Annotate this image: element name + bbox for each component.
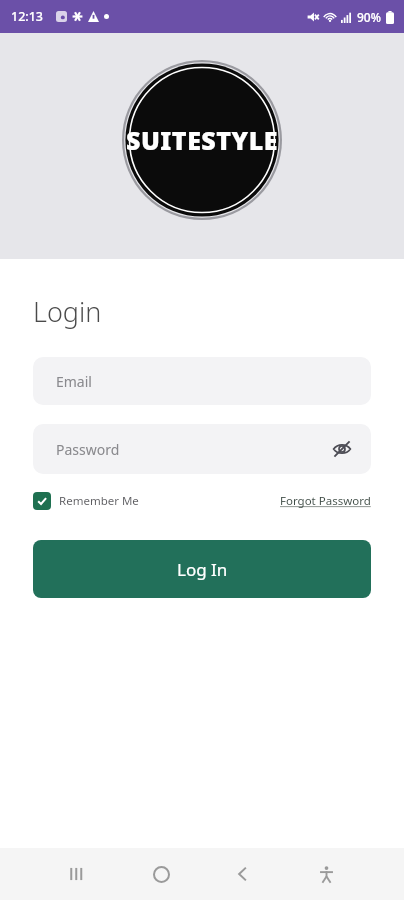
staticText: Email (56, 372, 92, 391)
staticText: Login (33, 293, 102, 330)
button[interactable]: Log In (33, 540, 371, 598)
staticText: Password (56, 440, 120, 459)
button[interactable]: Remember Me (33, 492, 139, 510)
button[interactable]: Show password (329, 436, 355, 462)
staticText: Remember Me (59, 493, 139, 509)
staticText: 90% (357, 9, 381, 25)
staticText: SUITESTYLE (126, 123, 278, 157)
button[interactable]: Back (221, 852, 265, 896)
button[interactable]: Accessibility (304, 852, 348, 896)
staticText: Forgot Password (280, 493, 371, 509)
button[interactable]: Recent apps (56, 852, 100, 896)
staticText: 12:13 (11, 8, 44, 25)
staticText: Log In (177, 558, 228, 581)
button[interactable]: Forgot Password (280, 493, 371, 509)
button[interactable]: Home (139, 852, 183, 896)
button[interactable]: Email (33, 357, 371, 405)
button[interactable]: Password (33, 424, 371, 474)
